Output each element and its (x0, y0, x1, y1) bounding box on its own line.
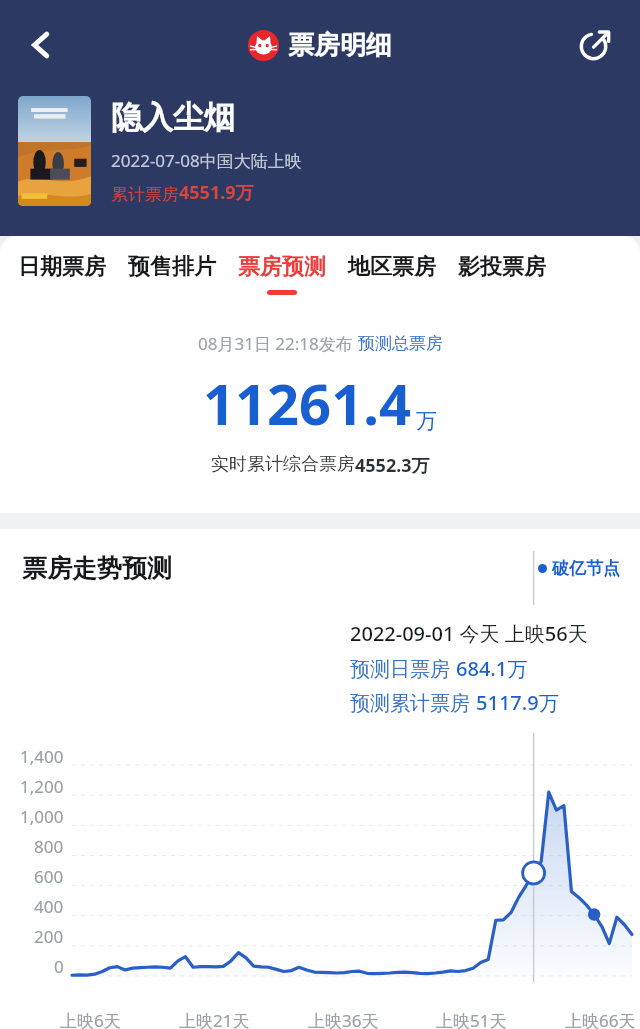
button[interactable]: 2022-09-01 今天 上映56天 (332, 605, 618, 733)
staticText: 票房明细 (288, 29, 392, 62)
button[interactable]: 地区票房 (348, 236, 436, 308)
staticText: 11261.4 (203, 365, 411, 441)
staticText: 600 (34, 865, 64, 888)
staticText: 日期票房 (18, 253, 106, 281)
staticText: 684.1万 (456, 655, 528, 682)
staticText: 预测日票房 (350, 655, 456, 682)
staticText: 0 (54, 955, 64, 978)
staticText: 5117.9万 (476, 689, 559, 716)
button[interactable]: Back (12, 16, 70, 74)
button[interactable]: 预售排片 (128, 236, 216, 308)
staticText: 400 (34, 895, 64, 918)
staticText: 预测总票房 (358, 333, 443, 354)
staticText: 200 (34, 925, 64, 948)
staticText: 上映21天 (179, 1009, 250, 1029)
staticText: 1,000 (20, 805, 64, 828)
button[interactable]: 日期票房 (18, 236, 106, 308)
button[interactable]: 影投票房 (458, 236, 546, 308)
staticText: 票房走势预测 (22, 553, 172, 584)
button[interactable]: 票房预测 (238, 236, 326, 308)
staticText: 上映66天 (565, 1009, 636, 1029)
staticText: 累计票房 (111, 184, 179, 205)
staticText: 4551.9万 (179, 180, 254, 205)
staticText: 2022-07-08中国大陆上映 (111, 149, 302, 172)
staticText: 08月31日 22:18发布 (198, 332, 358, 355)
staticText: 2022-09-01 今天 上映56天 (350, 620, 588, 647)
staticText: 1,200 (20, 775, 64, 798)
staticText: 预测累计票房 (350, 689, 476, 716)
staticText: 1,400 (20, 745, 64, 768)
staticText: 上映6天 (60, 1009, 121, 1029)
button[interactable]: 破亿节点 (538, 558, 620, 579)
staticText: 4552.3万 (355, 453, 430, 478)
staticText: 预售排片 (128, 253, 216, 281)
staticText: 隐入尘烟 (111, 98, 235, 137)
staticText: 800 (34, 835, 64, 858)
staticText: 实时累计综合票房 (211, 453, 355, 476)
staticText: 地区票房 (348, 253, 436, 281)
staticText: 影投票房 (458, 253, 546, 281)
staticText: 票房预测 (238, 253, 326, 281)
staticText: 破亿节点 (552, 558, 620, 579)
staticText: 万 (416, 408, 437, 434)
staticText: 上映51天 (436, 1009, 507, 1029)
button[interactable]: Share (568, 18, 622, 72)
staticText: 上映36天 (308, 1009, 379, 1029)
